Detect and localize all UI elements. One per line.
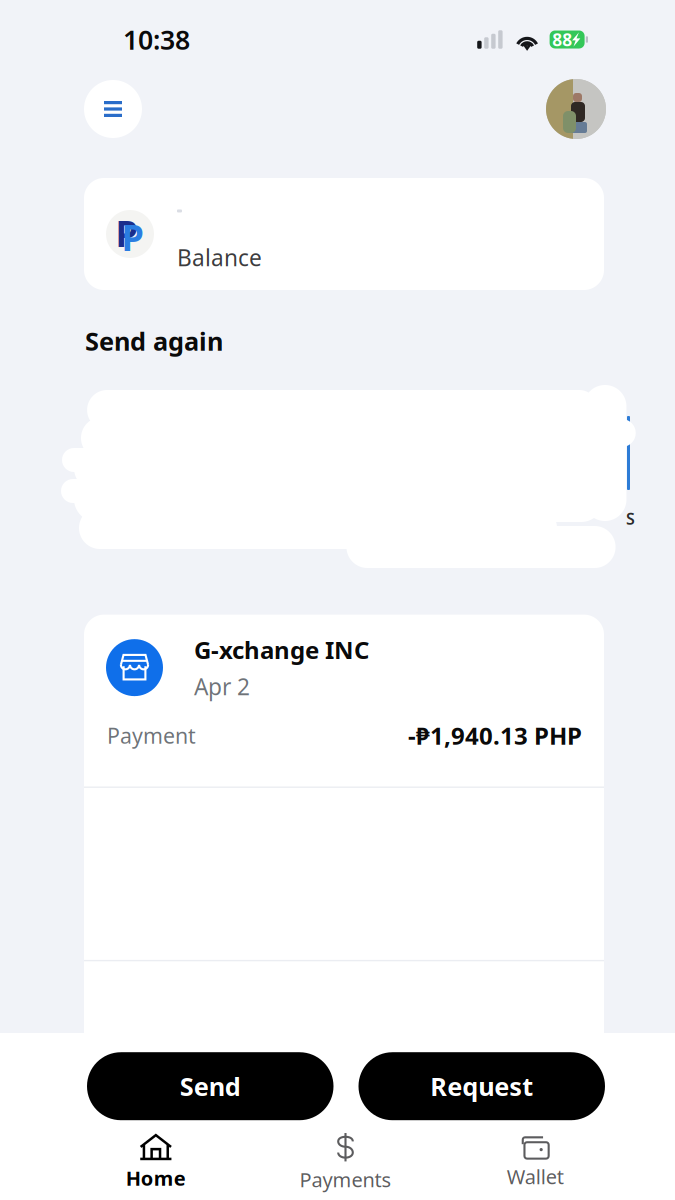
staticText: -₱1,940.13 PHP [408,720,582,751]
staticText: Payments [299,1166,391,1193]
staticText: G-xchange INC [194,634,369,665]
staticText: Home [126,1165,186,1191]
button[interactable]: Wallet [440,1135,630,1190]
button[interactable]: Send [87,1052,333,1120]
staticText: Apr 2 [194,671,250,702]
staticText: Send [180,1069,241,1103]
staticText: 10:38 [123,22,190,57]
button[interactable]: Home [61,1134,251,1191]
staticText: Send again [85,324,223,358]
button[interactable]: Request [358,1052,605,1120]
button[interactable]: Menu [84,80,142,138]
staticText: 88 [552,28,572,51]
button[interactable]: Profile [546,79,606,139]
staticText: S [626,508,635,529]
button[interactable]: Payments [251,1132,440,1193]
staticText: P [121,213,143,261]
button[interactable]: P [84,178,604,290]
staticText: Payment [107,721,196,750]
staticText: Balance [177,242,262,272]
staticText: P [115,209,137,257]
staticText: Request [430,1069,533,1103]
staticText: Wallet [507,1163,564,1190]
